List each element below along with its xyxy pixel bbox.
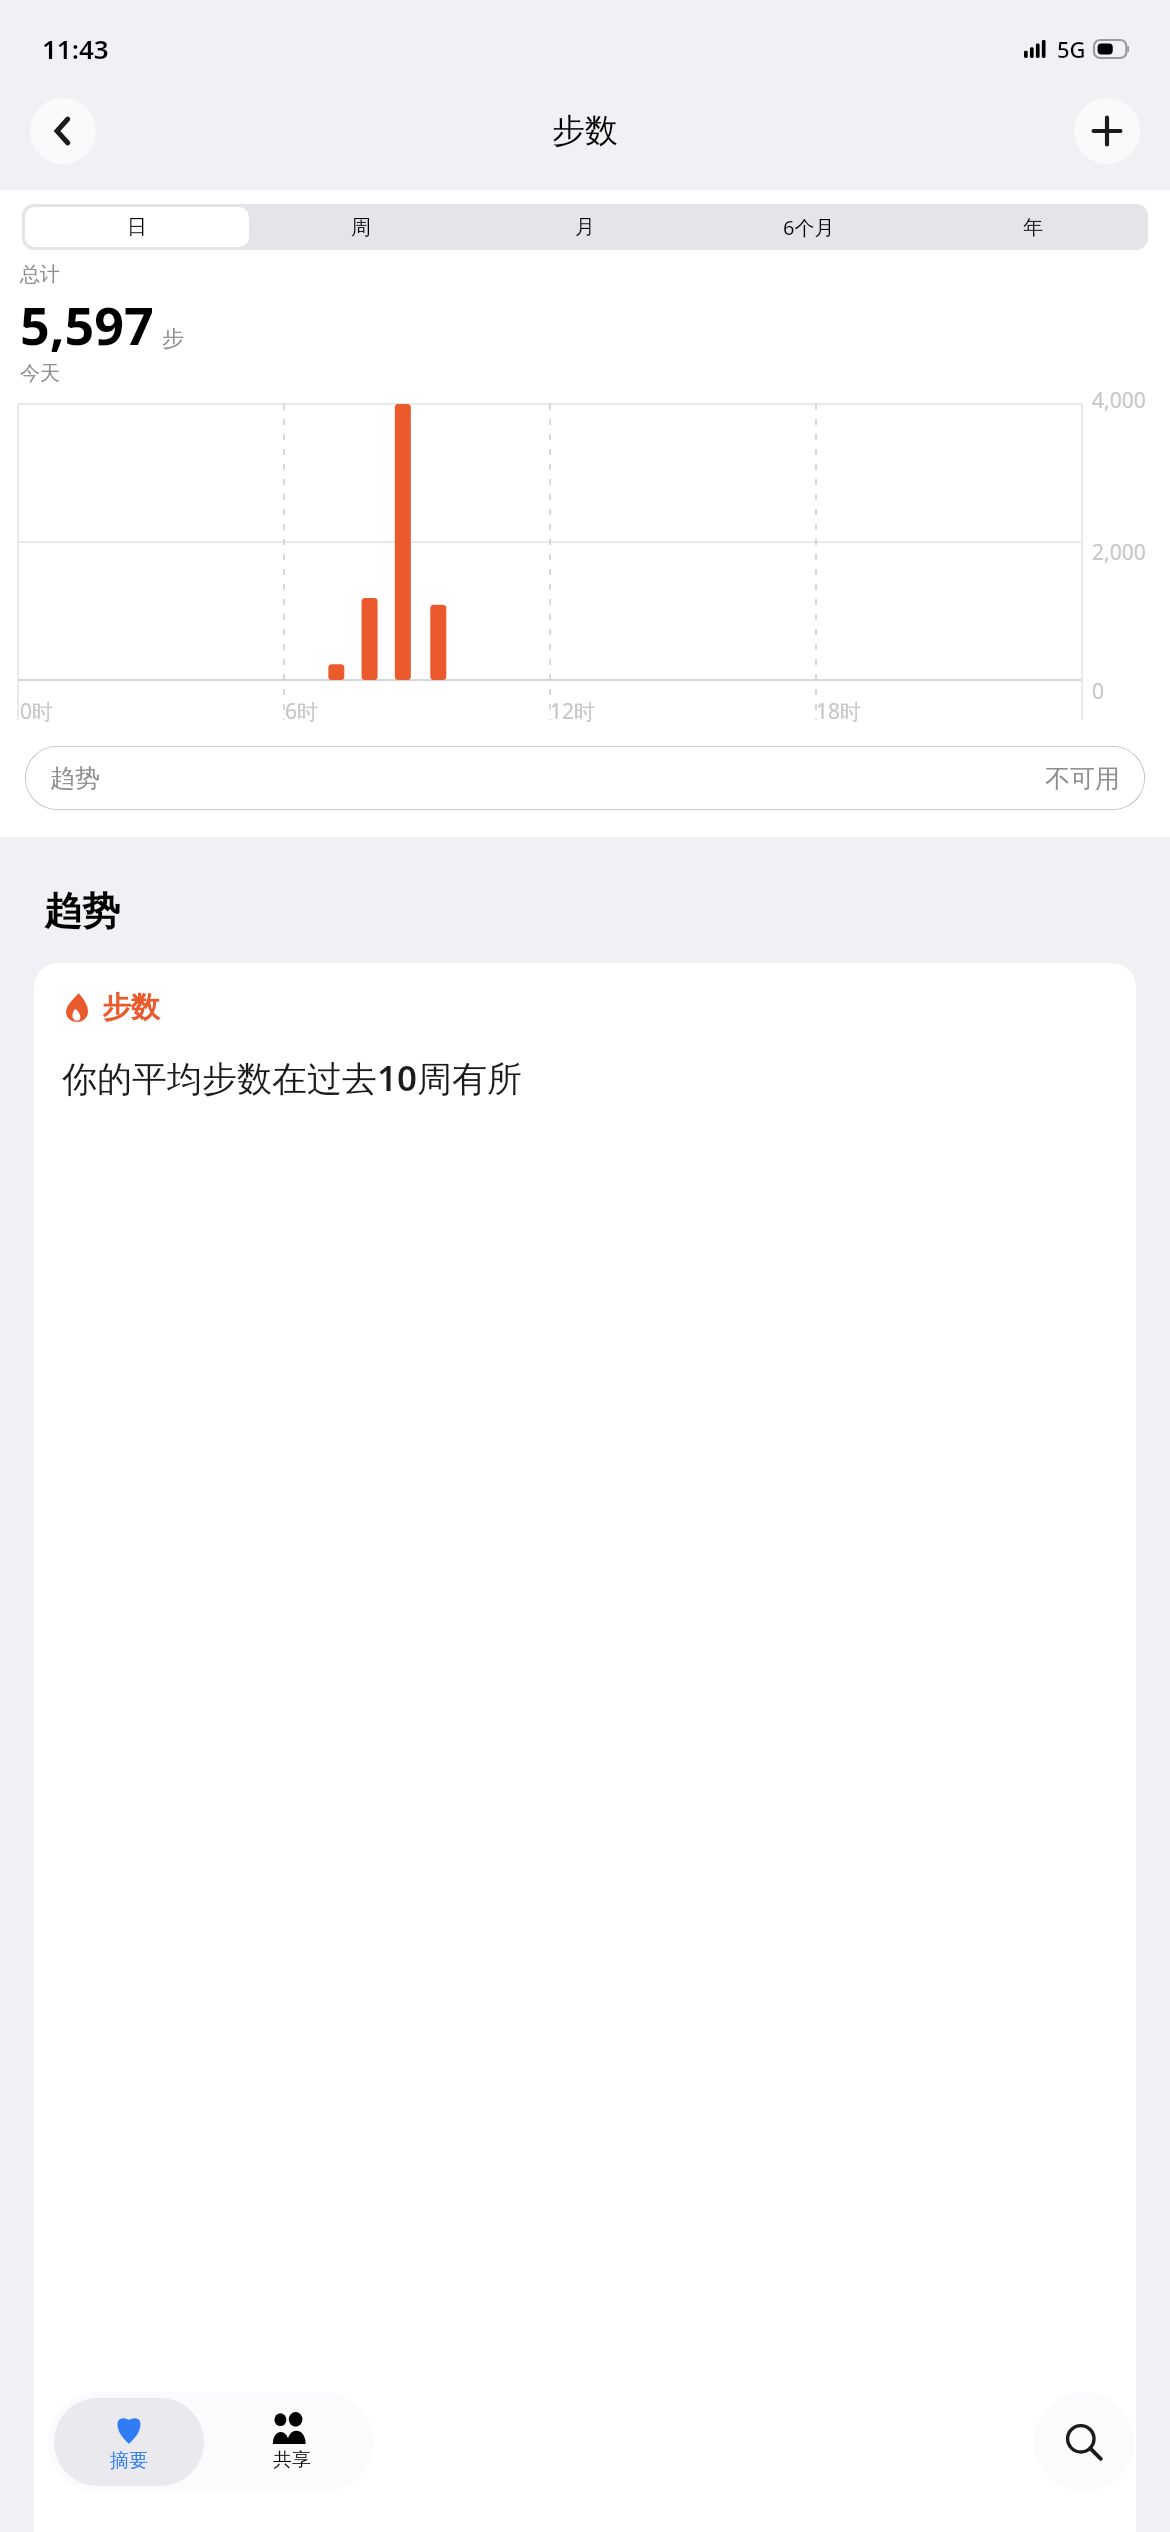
staticText: 周 <box>351 215 371 240</box>
staticText: 月 <box>575 215 595 240</box>
staticText: 摘要 <box>110 2449 148 2473</box>
staticText: 不可用 <box>1045 763 1120 794</box>
staticText: 步 <box>162 325 184 353</box>
button[interactable]: 月 <box>473 207 697 247</box>
staticText: 4,000 <box>1092 386 1146 415</box>
staticText: 6个月 <box>783 214 835 241</box>
button[interactable]: 日 <box>25 207 249 247</box>
staticText: 趋势 <box>50 763 100 794</box>
staticText: 2,000 <box>1092 538 1146 567</box>
button[interactable]: 趋势 <box>25 746 1145 810</box>
staticText: 11:43 <box>42 31 109 66</box>
staticText: 0 <box>1092 677 1105 706</box>
staticText: 步数 <box>102 989 160 1026</box>
staticText: 6时 <box>285 697 319 726</box>
staticText: 总计 <box>20 262 60 287</box>
button[interactable]: Search <box>1034 2392 1134 2492</box>
button[interactable]: 步数 <box>34 963 1136 2532</box>
button[interactable]: 周 <box>249 207 473 247</box>
button[interactable]: 年 <box>921 207 1145 247</box>
staticText: 今天 <box>20 361 60 386</box>
staticText: 18时 <box>816 697 862 726</box>
button[interactable]: Add <box>1074 98 1140 164</box>
staticText: 步数 <box>552 110 618 152</box>
button[interactable]: 摘要 <box>54 2398 204 2486</box>
staticText: 5,597 <box>20 289 154 360</box>
button[interactable]: 6个月 <box>697 207 921 247</box>
staticText: 日 <box>127 215 147 240</box>
staticText: 共享 <box>273 2448 311 2472</box>
staticText: 你的平均步数在过去10周有所 <box>62 1054 523 1102</box>
staticText: 12时 <box>550 697 596 726</box>
staticText: 5G <box>1057 34 1086 64</box>
staticText: 0时 <box>20 697 54 726</box>
button[interactable]: 共享 <box>216 2398 367 2486</box>
staticText: 趋势 <box>44 887 120 935</box>
staticText: 年 <box>1023 215 1043 240</box>
button[interactable]: Back <box>30 98 96 164</box>
